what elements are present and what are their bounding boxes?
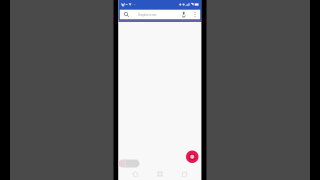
staticText: Explore.ee: [138, 12, 156, 17]
button[interactable]: Explore.ee: [120, 10, 200, 19]
button[interactable]: Home: [127, 168, 143, 180]
button[interactable]: Collections: [152, 168, 168, 180]
button[interactable]: Record: [186, 150, 201, 168]
button[interactable]: Recent: [177, 168, 193, 180]
button[interactable]: Snackbar: [118, 159, 139, 168]
